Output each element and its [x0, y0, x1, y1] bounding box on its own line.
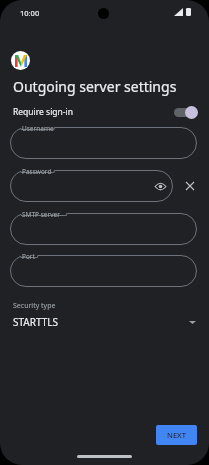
button[interactable] — [10, 127, 197, 159]
staticText: SMTP server — [22, 210, 60, 219]
button[interactable]: Clear — [183, 179, 196, 192]
button[interactable]: STARTTLS — [0, 312, 209, 332]
button[interactable] — [10, 213, 197, 245]
staticText: Security type — [13, 301, 56, 311]
button[interactable]: Show password — [153, 179, 167, 193]
staticText: Require sign-in — [13, 106, 74, 118]
staticText: NEXT — [167, 430, 186, 440]
button[interactable] — [10, 255, 197, 287]
staticText: STARTTLS — [13, 315, 59, 329]
staticText: Outgoing server settings — [13, 77, 177, 96]
staticText: 10:00 — [20, 8, 40, 18]
staticText: Port — [22, 252, 35, 261]
button[interactable] — [10, 170, 173, 202]
button[interactable]: Require sign-in toggle — [172, 106, 198, 119]
staticText: Username — [22, 124, 54, 133]
button[interactable]: NEXT — [156, 425, 197, 445]
staticText: Password — [22, 167, 52, 176]
button[interactable]: Require sign-in — [0, 101, 209, 123]
